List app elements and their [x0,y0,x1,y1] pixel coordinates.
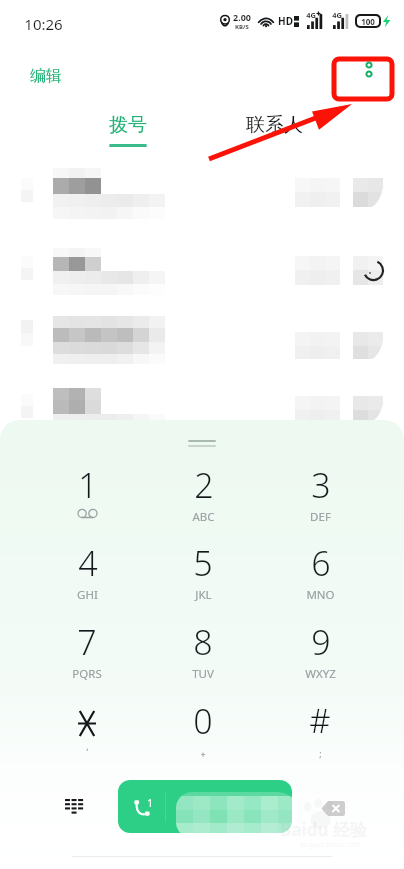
button[interactable] [0,354,404,416]
staticText: HD [278,14,293,28]
button[interactable] [0,168,404,230]
staticText: 2.00 [233,11,251,23]
staticText: 1 [78,462,98,508]
staticText: 0 [193,698,213,744]
button[interactable]: 0 [151,698,255,762]
staticText: + [200,748,206,760]
button[interactable]: Hide keypad [56,790,92,826]
button[interactable]: Delete [315,790,351,826]
staticText: ABC [192,509,215,525]
staticText: TUV [192,666,214,682]
button[interactable]: 编辑 [10,56,82,96]
button[interactable]: 1 [35,462,139,526]
button[interactable] [0,230,404,292]
button[interactable]: 8 [151,619,255,683]
button[interactable]: 6 [268,540,372,604]
button[interactable]: 联系人 [232,97,316,147]
staticText: 10:26 [24,14,63,34]
staticText: 4G [332,10,342,20]
staticText: 2 [194,462,214,508]
staticText: 编辑 [30,66,62,86]
staticText: 联系人 [246,113,303,137]
button[interactable]: 7 [35,619,139,683]
staticText: 1 [147,796,153,810]
button[interactable]: , [35,698,139,762]
button[interactable]: 9 [268,619,372,683]
staticText: ; [319,747,322,759]
staticText: 8 [193,619,213,665]
staticText: PQRS [72,666,102,682]
staticText: 5 [193,540,213,586]
staticText: MNO [306,587,335,603]
button[interactable]: 2 [151,462,255,526]
staticText: 4G [306,10,316,20]
staticText: Baidu 经验 [280,818,367,841]
button[interactable] [0,292,404,354]
staticText: 6 [311,540,331,586]
button[interactable]: More options [351,50,387,86]
button[interactable]: 4 [35,540,139,604]
button[interactable]: Call [118,780,292,833]
button[interactable]: 5 [151,540,255,604]
button[interactable]: 3 [268,462,372,526]
button[interactable]: # [268,698,372,762]
staticText: GHI [77,587,98,603]
staticText: WXYZ [305,666,336,682]
staticText: 3 [311,462,331,508]
staticText: JKL [195,587,212,603]
staticText: 4 [78,540,98,586]
staticText: DEF [310,509,331,525]
staticText: 9 [311,619,331,665]
staticText: # [309,698,331,743]
staticText: 拨号 [109,113,147,137]
staticText: KB/S [235,23,249,31]
staticText: 7 [77,619,97,665]
staticText: , [86,740,89,752]
button[interactable]: 拨号 [96,97,160,155]
staticText: 100 [361,16,375,26]
